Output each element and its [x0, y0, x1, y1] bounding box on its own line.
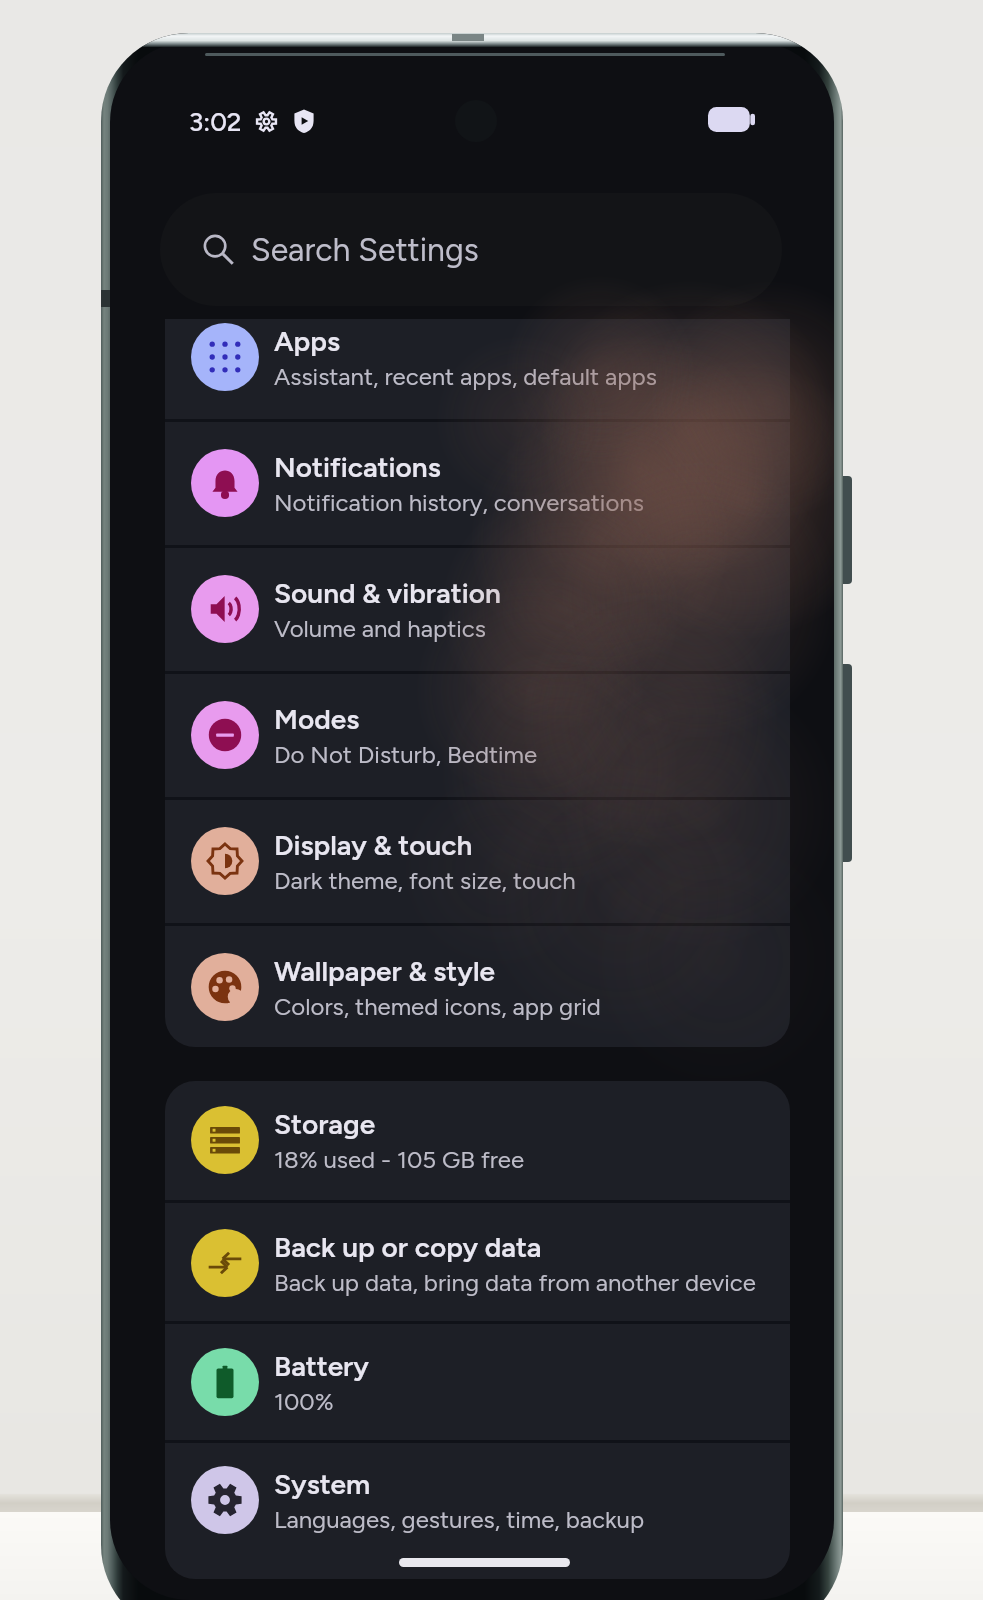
staticText: Sound & vibration [274, 576, 501, 610]
staticText: 3:02 [189, 106, 242, 136]
staticText: Wallpaper & style [274, 954, 495, 988]
button[interactable]: Battery [165, 1322, 790, 1442]
button[interactable]: Notifications [165, 423, 790, 543]
staticText: Battery [274, 1349, 369, 1383]
staticText: Colors, themed icons, app grid [274, 992, 601, 1021]
staticText: Back up or copy data [274, 1230, 542, 1264]
staticText: Dark theme, font size, touch [274, 866, 576, 895]
staticText: Languages, gestures, time, backup [274, 1505, 645, 1534]
staticText: Back up data, bring data from another de… [274, 1268, 756, 1297]
button[interactable]: Modes [165, 675, 790, 795]
staticText: Assistant, recent apps, default apps [274, 362, 657, 391]
button[interactable]: Search Settings [160, 193, 782, 306]
staticText: Notifications [274, 450, 441, 484]
button[interactable]: Sound & vibration [165, 549, 790, 669]
button[interactable]: Storage [165, 1080, 790, 1200]
button[interactable]: Back up or copy data [165, 1203, 790, 1323]
staticText: System [274, 1467, 371, 1501]
staticText: Modes [274, 702, 360, 736]
staticText: Do Not Disturb, Bedtime [274, 740, 538, 769]
staticText: Volume and haptics [274, 614, 486, 643]
staticText: Search Settings [251, 231, 479, 269]
button[interactable]: Display & touch [165, 801, 790, 921]
button[interactable]: Apps [165, 297, 790, 417]
staticText: Storage [274, 1107, 376, 1141]
staticText: 100% [274, 1387, 334, 1416]
button[interactable]: Wallpaper & style [165, 927, 790, 1047]
button[interactable]: System [165, 1440, 790, 1560]
staticText: Display & touch [274, 828, 473, 862]
staticText: 18% used - 105 GB free [274, 1145, 525, 1174]
staticText: Apps [274, 324, 341, 358]
other: Battery full [708, 107, 755, 132]
staticText: Notification history, conversations [274, 488, 644, 517]
